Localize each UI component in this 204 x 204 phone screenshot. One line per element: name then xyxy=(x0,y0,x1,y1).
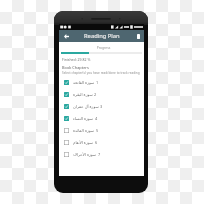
button[interactable]: سورة الأنعام xyxy=(59,136,144,148)
button[interactable]: سورة المائدة xyxy=(59,124,144,136)
button[interactable]: Book xyxy=(133,30,144,42)
staticText: 4 xyxy=(95,116,98,121)
staticText: 2 xyxy=(94,92,97,97)
staticText: Progress xyxy=(61,45,146,49)
staticText: Finished: 29.82 % xyxy=(62,57,91,62)
staticText: Reading Plan xyxy=(84,32,120,40)
button[interactable]: سورة النساء xyxy=(59,112,144,124)
staticText: سورة النساء xyxy=(73,116,94,121)
staticText: سورة البقرة xyxy=(73,92,93,97)
staticText: Select chapter(s) you have read/done to … xyxy=(62,71,147,75)
staticText: سورة المائدة xyxy=(73,128,95,133)
staticText: سورة الأعراف xyxy=(73,152,97,157)
staticText: 1 xyxy=(96,80,99,85)
staticText: سورة الأنعام xyxy=(73,140,94,145)
button[interactable]: سورة الفاتحة xyxy=(59,76,144,88)
staticText: 5 xyxy=(96,128,99,133)
staticText: سورة آل عمران xyxy=(73,104,99,109)
staticText: سورة الفاتحة xyxy=(73,80,95,85)
button[interactable]: سورة البقرة xyxy=(59,88,144,100)
staticText: 7 xyxy=(98,152,101,157)
staticText: 3 xyxy=(100,104,103,109)
staticText: Book Chapters xyxy=(62,65,89,70)
button[interactable]: سورة الأعراف xyxy=(59,148,144,160)
button[interactable]: Back xyxy=(59,30,71,42)
button[interactable]: سورة آل عمران xyxy=(59,100,144,112)
staticText: 6 xyxy=(95,140,98,145)
